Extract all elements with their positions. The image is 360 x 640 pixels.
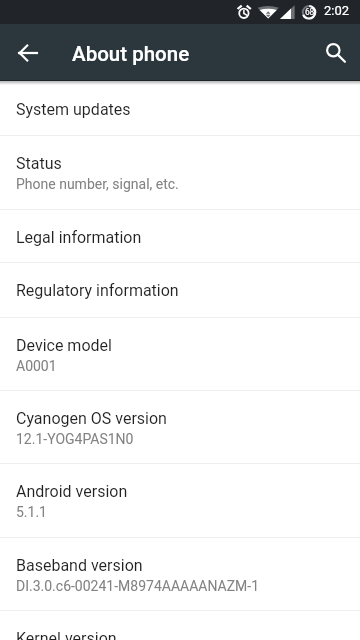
staticText: DI.3.0.c6-00241-M8974AAAAANAZM-1 [16,578,260,594]
staticText: About phone [72,42,190,66]
staticText: Cyanogen OS version [16,409,167,428]
button[interactable]: Cyanogen OS version [0,391,360,464]
staticText: Legal information [16,228,142,247]
button[interactable]: Regulatory information [0,263,360,318]
staticText: Status [16,154,62,173]
staticText: 68 [305,7,314,17]
staticText: 5.1.1 [16,504,47,520]
button[interactable]: Kernel version [0,611,360,640]
staticText: Device model [16,336,112,355]
staticText: 12.1-YOG4PAS1N0 [16,431,134,447]
button[interactable]: Device model [0,318,360,391]
button[interactable]: Android version [0,464,360,538]
button[interactable]: Legal information [0,210,360,263]
staticText: Phone number, signal, etc. [16,176,179,192]
button[interactable]: System updates [0,81,360,136]
button[interactable]: Search [304,25,360,81]
staticText: Baseband version [16,556,143,575]
staticText: A0001 [16,358,57,374]
staticText: Android version [16,482,128,501]
staticText: Kernel version [16,629,117,640]
button[interactable]: Status [0,136,360,210]
button[interactable]: Back [0,25,56,81]
staticText: System updates [16,100,131,119]
button[interactable]: Baseband version [0,538,360,611]
staticText: Regulatory information [16,281,179,300]
staticText: 2:02 [324,3,350,18]
